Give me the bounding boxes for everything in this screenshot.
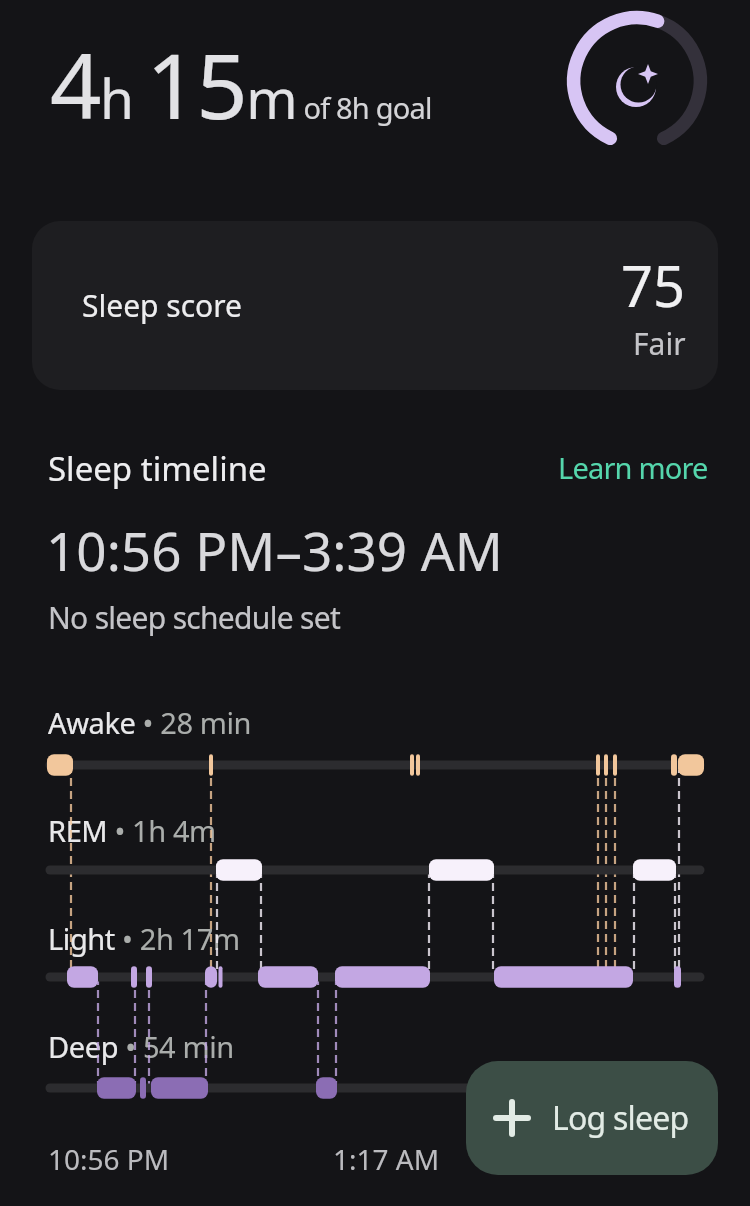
button[interactable]: Learn more (558, 448, 708, 487)
staticText: Deep • 54 min (48, 1027, 234, 1066)
button[interactable]: Log sleep (466, 1061, 718, 1175)
staticText: Fair (633, 323, 686, 364)
staticText: No sleep schedule set (48, 597, 341, 638)
staticText: 10:56 PM (48, 1140, 170, 1178)
staticText: Log sleep (552, 1096, 689, 1140)
button[interactable]: Sleep score (32, 221, 718, 390)
staticText: REM • 1h 4m (48, 811, 216, 850)
staticText: Sleep score (82, 285, 242, 326)
staticText: 4h 15m of 8h goal (50, 23, 432, 146)
staticText: 1:17 AM (333, 1140, 440, 1178)
staticText: Awake • 28 min (48, 703, 252, 742)
staticText: 10:56 PM–3:39 AM (46, 514, 503, 586)
staticText: Sleep timeline (48, 446, 267, 491)
staticText: 75 (621, 247, 686, 323)
staticText: Light • 2h 17m (48, 919, 240, 958)
